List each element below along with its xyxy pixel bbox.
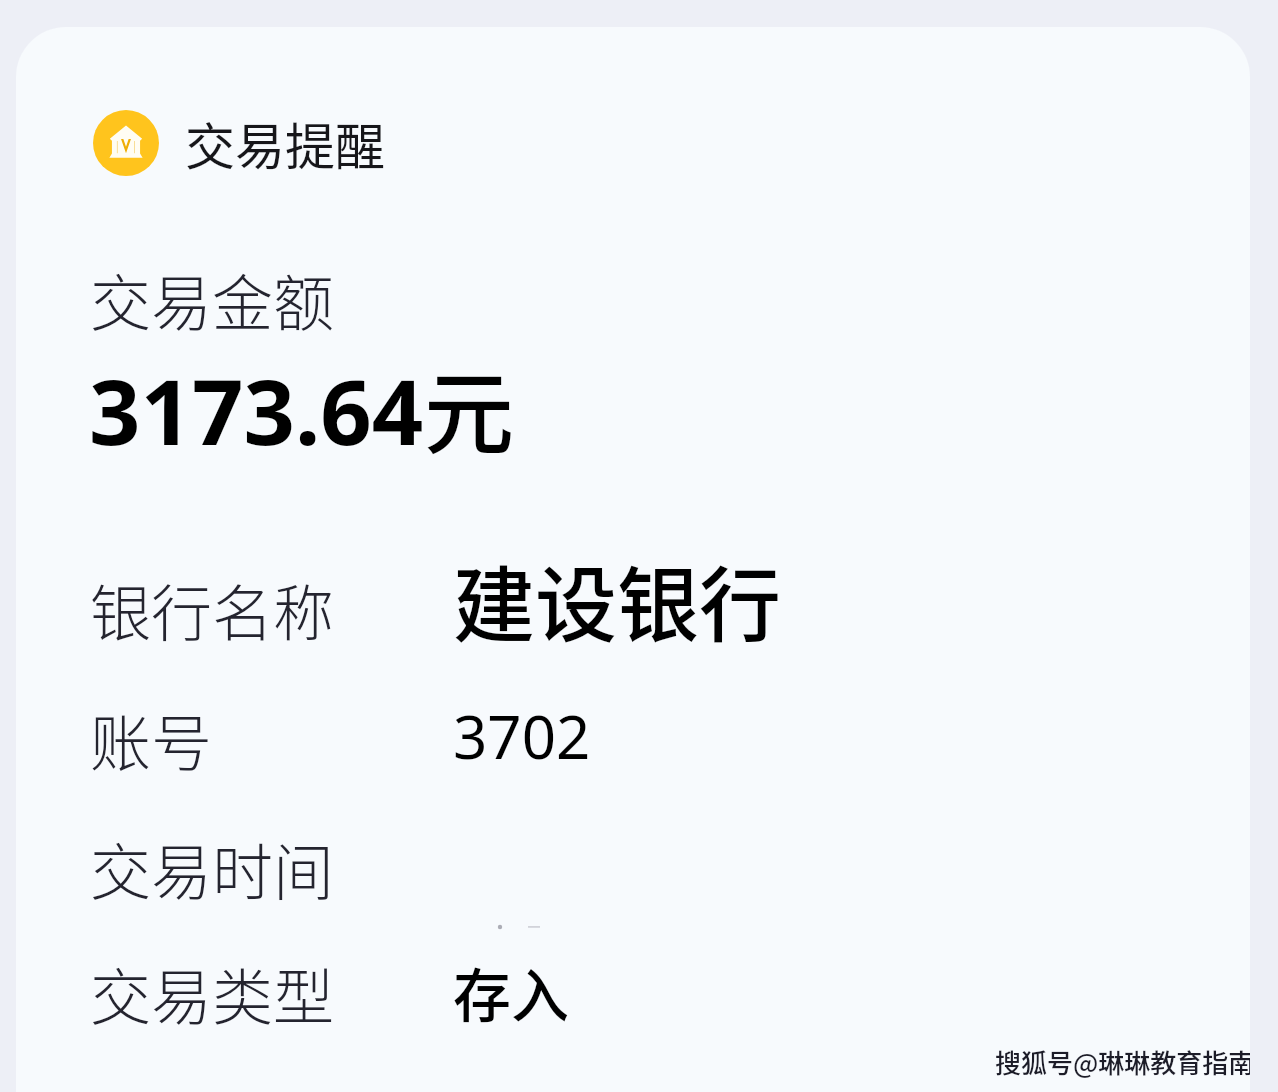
staticText: 建设银行 bbox=[453, 540, 782, 659]
staticText: 交易金额 bbox=[90, 255, 335, 343]
staticText: 账号 bbox=[90, 695, 213, 783]
button[interactable] bbox=[16, 237, 1250, 487]
staticText: 存入 bbox=[453, 950, 570, 1034]
button[interactable] bbox=[16, 804, 1250, 904]
staticText: 交易时间 bbox=[90, 824, 335, 912]
staticText: 3173.64 bbox=[89, 349, 424, 472]
button[interactable] bbox=[16, 929, 1250, 1029]
staticText: 搜狐号@琳琳教育指南 bbox=[995, 1043, 1250, 1081]
button[interactable]: Bank bbox=[93, 107, 385, 179]
button[interactable] bbox=[16, 675, 1250, 775]
button[interactable] bbox=[16, 545, 1250, 645]
staticText: 银行名称 bbox=[90, 565, 335, 653]
staticText: 元 bbox=[424, 342, 514, 472]
staticText: 交易类型 bbox=[90, 949, 335, 1037]
other: Bank bbox=[93, 110, 159, 176]
staticText: 3702 bbox=[453, 695, 591, 777]
staticText: 交易提醒 bbox=[185, 107, 385, 179]
